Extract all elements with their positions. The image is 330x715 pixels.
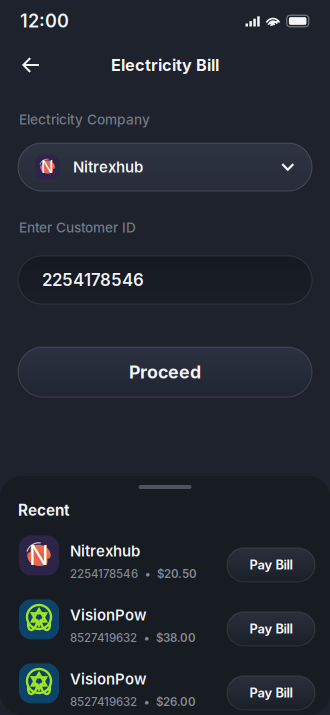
staticText: N (41, 157, 54, 177)
staticText: VisionPow (70, 670, 147, 688)
staticText: Pay Bill (249, 621, 292, 637)
staticText: Nitrexhub (70, 542, 140, 560)
staticText: 12:00 (20, 10, 69, 32)
staticText: Electricity Company (19, 111, 150, 128)
staticText: 2254178546 (70, 567, 138, 581)
staticText: Pay Bill (249, 557, 292, 573)
staticText: Proceed (129, 361, 201, 383)
staticText: Enter Customer ID (19, 219, 136, 236)
staticText: 8527419632 (70, 631, 137, 645)
button[interactable]: N (18, 143, 312, 191)
button[interactable]: Back (10, 44, 52, 86)
staticText: VisionPow (70, 606, 147, 624)
staticText: Electricity Bill (111, 55, 219, 75)
staticText: 8527419632 (70, 695, 137, 709)
staticText: Recent (18, 501, 70, 519)
staticText: $26.00 (156, 695, 196, 709)
staticText: N (29, 539, 49, 572)
button[interactable]: Pay Bill (227, 593, 315, 646)
button[interactable]: Proceed (18, 347, 312, 397)
button[interactable]: Pay Bill (227, 529, 315, 582)
button[interactable]: Pay Bill (227, 657, 315, 710)
staticText: • (144, 631, 149, 645)
staticText: $20.50 (157, 567, 197, 581)
staticText: • (145, 567, 150, 581)
staticText: Pay Bill (249, 685, 292, 701)
staticText: $38.00 (156, 631, 196, 645)
staticText: 2254178546 (42, 270, 144, 290)
staticText: • (144, 695, 149, 709)
staticText: Nitrexhub (73, 158, 143, 176)
